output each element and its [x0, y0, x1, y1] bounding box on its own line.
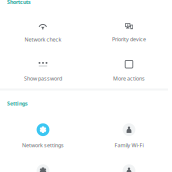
button[interactable]: Guest Wi-Fi	[89, 164, 169, 172]
button[interactable]: Priority device	[89, 20, 169, 46]
button[interactable]: Family Wi-Fi	[89, 123, 169, 149]
button[interactable]: Devices	[3, 164, 83, 172]
staticText: Network check	[24, 36, 61, 43]
staticText: Shortcuts	[7, 0, 31, 6]
staticText: Network settings	[22, 142, 64, 149]
staticText: Settings	[7, 100, 28, 107]
staticText: Priority device	[112, 36, 146, 43]
button[interactable]: Network settings	[3, 123, 83, 149]
staticText: Show password	[24, 75, 62, 82]
staticText: More actions	[113, 75, 145, 82]
button[interactable]: Network check	[3, 20, 83, 46]
staticText: Family Wi-Fi	[114, 142, 143, 149]
button[interactable]: Show password	[3, 58, 83, 84]
button[interactable]: More actions	[89, 58, 169, 84]
